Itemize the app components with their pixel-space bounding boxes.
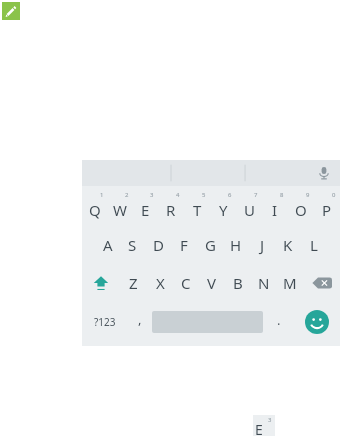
staticText: D: [153, 235, 164, 255]
staticText: 6: [228, 191, 232, 199]
button[interactable]: V: [199, 264, 225, 302]
staticText: I: [272, 200, 278, 220]
staticText: X: [156, 273, 165, 293]
staticText: B: [233, 273, 243, 293]
staticText: 0: [332, 191, 336, 199]
staticText: 5: [202, 191, 206, 199]
button[interactable]: I: [262, 188, 288, 226]
button[interactable]: .: [263, 302, 294, 342]
staticText: Z: [129, 273, 138, 293]
button[interactable]: ?123: [82, 302, 128, 342]
button[interactable]: ,: [128, 302, 152, 342]
staticText: J: [260, 235, 265, 255]
button[interactable]: R: [158, 188, 184, 226]
staticText: E: [141, 200, 150, 220]
button[interactable]: M: [277, 264, 303, 302]
button[interactable]: D: [145, 226, 171, 264]
staticText: G: [205, 235, 216, 255]
staticText: H: [230, 235, 242, 255]
button[interactable]: E: [132, 188, 158, 226]
staticText: ?123: [94, 315, 116, 329]
staticText: 7: [254, 191, 258, 199]
staticText: C: [181, 273, 191, 293]
button[interactable]: Edit: [2, 2, 20, 20]
button[interactable]: T: [184, 188, 210, 226]
button[interactable]: H: [223, 226, 249, 264]
staticText: L: [310, 235, 318, 255]
staticText: R: [166, 200, 176, 220]
button[interactable]: W: [107, 188, 132, 226]
button[interactable]: Emoji: [294, 302, 340, 342]
staticText: Q: [89, 200, 101, 220]
staticText: K: [283, 235, 293, 255]
staticText: O: [295, 200, 307, 220]
staticText: ,: [138, 310, 142, 328]
button[interactable]: Q: [82, 188, 107, 226]
staticText: 8: [280, 191, 284, 199]
staticText: S: [128, 235, 137, 255]
staticText: N: [258, 273, 270, 293]
staticText: 1: [100, 191, 104, 199]
staticText: 9: [306, 191, 310, 199]
staticText: A: [103, 235, 113, 255]
button[interactable]: O: [288, 188, 314, 226]
button[interactable]: U: [236, 188, 262, 226]
button[interactable]: B: [225, 264, 251, 302]
button[interactable]: A: [95, 226, 120, 264]
staticText: 3: [268, 416, 272, 424]
button[interactable]: L: [301, 226, 327, 264]
staticText: E: [255, 420, 263, 436]
staticText: 3: [150, 191, 154, 199]
staticText: 2: [125, 191, 129, 199]
staticText: 4: [176, 191, 180, 199]
button[interactable]: F: [171, 226, 197, 264]
staticText: .: [277, 311, 281, 329]
button[interactable]: P: [314, 188, 340, 226]
button[interactable]: N: [251, 264, 277, 302]
staticText: W: [113, 200, 127, 220]
staticText: P: [322, 200, 332, 220]
button[interactable]: K: [275, 226, 301, 264]
button[interactable]: S: [120, 226, 145, 264]
staticText: M: [283, 273, 297, 293]
button[interactable]: Y: [210, 188, 236, 226]
button[interactable]: Shift: [82, 264, 120, 302]
button[interactable]: X: [147, 264, 173, 302]
staticText: U: [244, 200, 255, 220]
button[interactable]: Backspace: [303, 264, 340, 302]
button[interactable]: Z: [120, 264, 147, 302]
button[interactable]: Voice input: [314, 163, 334, 183]
button[interactable]: E: [253, 415, 275, 436]
button[interactable]: C: [173, 264, 199, 302]
button[interactable]: G: [197, 226, 223, 264]
staticText: Y: [219, 200, 228, 220]
staticText: F: [180, 235, 188, 255]
button[interactable]: J: [249, 226, 275, 264]
staticText: V: [207, 273, 217, 293]
staticText: T: [193, 200, 202, 220]
